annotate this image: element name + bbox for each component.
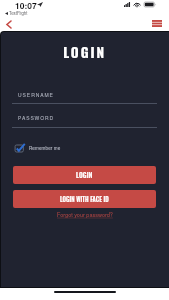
staticText: LOGIN: [76, 170, 93, 180]
staticText: LOGIN: [1, 42, 169, 62]
staticText: TestFlight: [9, 10, 28, 16]
button[interactable]: LOGIN: [13, 166, 156, 184]
staticText: Remember me: [29, 145, 61, 152]
staticText: PASSWORD: [18, 114, 55, 121]
staticText: USERNAME: [18, 91, 54, 98]
staticText: LOGIN WITH FACE ID: [60, 195, 109, 204]
button[interactable]: LOGIN WITH FACE ID: [13, 190, 156, 208]
button[interactable]: Menu: [149, 16, 165, 31]
button[interactable]: Remember me: [13, 142, 61, 154]
button[interactable]: Back: [0, 16, 17, 31]
staticText: 10:07: [15, 0, 37, 11]
button[interactable]: Forgot your password?: [57, 211, 113, 219]
